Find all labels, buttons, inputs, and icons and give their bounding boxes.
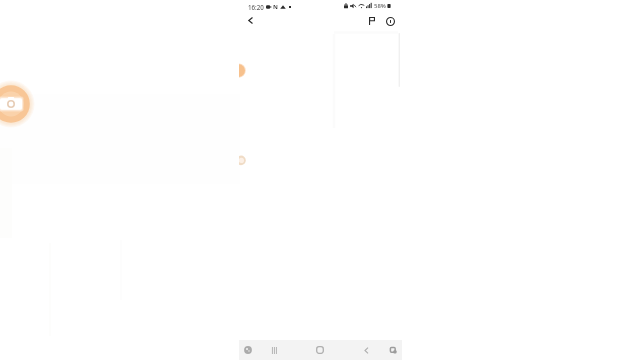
staticText: 58% [374,2,386,10]
button[interactable]: Info [382,13,398,29]
button[interactable]: Camera [0,76,40,134]
button[interactable]: Back [242,12,258,28]
staticText: N [273,3,278,11]
button[interactable]: Back [358,342,374,358]
staticText: 16:20 [248,3,264,11]
button[interactable]: Home [312,342,328,358]
button[interactable]: Screenshot [385,342,401,358]
button[interactable]: Report [364,13,380,29]
button[interactable]: Recents [266,342,282,358]
button[interactable]: Assistant [240,342,256,358]
